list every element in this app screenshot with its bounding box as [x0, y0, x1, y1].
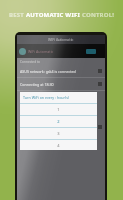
button[interactable]: 2	[20, 116, 97, 127]
staticText: WiFi Automatic	[28, 49, 54, 54]
staticText: Turn WiFi on every : hour(s)	[23, 95, 69, 100]
staticText: 1	[57, 107, 60, 112]
staticText: WiFi Automatic	[48, 37, 74, 42]
staticText: ASUS network: gsk4 is connected	[20, 69, 76, 74]
staticText: CONTROL!	[82, 11, 115, 19]
button[interactable]: 1	[20, 104, 97, 115]
staticText: Connecting at 18:30	[20, 82, 54, 87]
button[interactable]: 4	[20, 140, 97, 150]
staticText: AUTOMATIC WIFI	[26, 11, 82, 19]
button[interactable]: Turn off/disable WiFi when in airplane m…	[17, 121, 105, 133]
staticText: BEST	[9, 11, 26, 19]
staticText: 4	[57, 143, 60, 148]
button[interactable]: ASUS network: gsk4 is connected	[17, 65, 105, 77]
button[interactable]: 3	[20, 128, 97, 139]
staticText: Connected to	[20, 60, 41, 64]
staticText: 3	[57, 131, 60, 136]
staticText: Advanced settings	[20, 115, 48, 119]
staticText: 2	[57, 119, 60, 124]
staticText: Turn off/disable WiFi when in airplane m…	[20, 125, 95, 130]
button[interactable]: Connecting at 18:30	[17, 78, 105, 90]
button[interactable]: WiFi Automatic	[17, 44, 105, 58]
